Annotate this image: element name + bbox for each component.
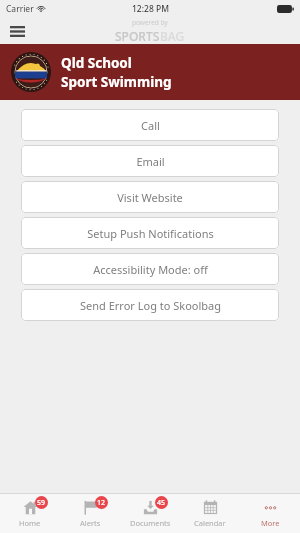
button[interactable]: Visit Website bbox=[21, 181, 279, 213]
button[interactable]: Menu bbox=[3, 18, 31, 44]
staticText: Call bbox=[141, 118, 160, 133]
staticText: Carrier bbox=[6, 3, 34, 15]
staticText: Sport Swimming bbox=[61, 73, 172, 91]
staticText: 12:28 PM bbox=[132, 3, 169, 15]
button[interactable]: Accessibility Mode: off bbox=[21, 253, 279, 285]
staticText: 12 bbox=[97, 498, 106, 508]
staticText: Documents bbox=[130, 518, 171, 528]
staticText: Setup Push Notifications bbox=[87, 226, 214, 241]
staticText: Email bbox=[136, 154, 165, 169]
staticText: 45 bbox=[157, 498, 166, 508]
staticText: Home bbox=[19, 518, 41, 528]
button[interactable]: Send Error Log to Skoolbag bbox=[21, 289, 279, 321]
staticText: Accessibility Mode: off bbox=[93, 262, 208, 277]
staticText: BAG bbox=[160, 28, 185, 44]
staticText: Qld School bbox=[61, 54, 132, 72]
staticText: SPORTS bbox=[115, 28, 160, 44]
staticText: 59 bbox=[37, 498, 46, 508]
button[interactable]: 59 bbox=[0, 494, 60, 533]
button[interactable]: More bbox=[240, 494, 300, 533]
staticText: Send Error Log to Skoolbag bbox=[80, 298, 221, 313]
button[interactable]: Calendar bbox=[180, 494, 240, 533]
button[interactable]: Call bbox=[21, 109, 279, 141]
staticText: More bbox=[261, 518, 280, 528]
staticText: Alerts bbox=[80, 518, 101, 528]
button[interactable]: 45 bbox=[120, 494, 180, 533]
staticText: powered by bbox=[132, 18, 168, 27]
button[interactable]: Email bbox=[21, 145, 279, 177]
staticText: Calendar bbox=[194, 518, 226, 528]
staticText: Visit Website bbox=[117, 190, 183, 205]
button[interactable]: 12 bbox=[60, 494, 120, 533]
button[interactable]: Setup Push Notifications bbox=[21, 217, 279, 249]
